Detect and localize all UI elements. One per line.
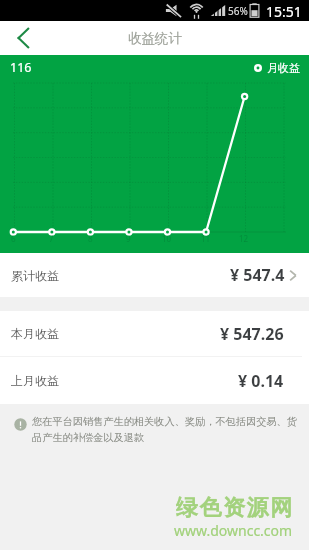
staticText: ¥ 547.4: [230, 264, 285, 286]
button[interactable]: 上月收益: [0, 357, 309, 404]
staticText: 累计收益: [11, 268, 59, 283]
staticText: 本月收益: [11, 326, 59, 341]
staticText: ¥ 0.14: [238, 370, 284, 392]
staticText: 116: [10, 59, 32, 76]
staticText: 56%: [228, 4, 248, 18]
staticText: www.downcc.com: [174, 521, 293, 540]
button[interactable]: 本月收益: [0, 311, 309, 356]
staticText: 8: [88, 233, 93, 244]
staticText: 您在平台因销售产生的相关收入、奖励，不包括因交易、货品产生的补偿金以及退款: [32, 415, 301, 444]
staticText: 12: [239, 233, 249, 244]
staticText: 9: [126, 233, 131, 244]
staticText: 收益统计: [128, 30, 182, 47]
staticText: 月收益: [267, 61, 300, 75]
staticText: 6: [11, 233, 16, 244]
staticText: 7: [49, 233, 54, 244]
staticText: 10: [162, 233, 172, 244]
button[interactable]: Back: [0, 21, 44, 55]
staticText: ¥ 547.26: [220, 323, 284, 345]
staticText: 11: [201, 233, 211, 244]
staticText: 15:51: [266, 2, 302, 21]
button[interactable]: 累计收益: [0, 253, 309, 297]
staticText: 上月收益: [11, 373, 59, 388]
staticText: 绿色资源网: [175, 494, 293, 522]
